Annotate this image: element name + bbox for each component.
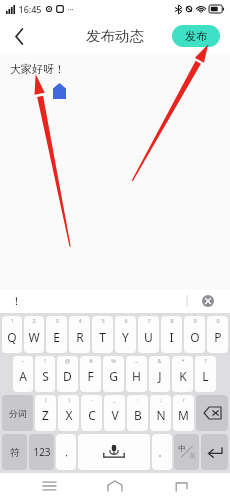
staticText: G: [109, 368, 118, 384]
staticText: 大家好呀！: [10, 62, 65, 76]
button[interactable]: 符: [2, 434, 27, 470]
staticText: I: [169, 329, 174, 345]
staticText: D: [63, 368, 72, 384]
staticText: A: [19, 368, 27, 384]
staticText: ~: [21, 357, 25, 364]
button[interactable]: 中: [174, 434, 199, 470]
button[interactable]: (: [35, 395, 56, 431]
button[interactable]: 发布: [172, 25, 220, 47]
staticText: Y: [122, 329, 129, 345]
button[interactable]: 3: [46, 316, 67, 353]
button[interactable]: @: [57, 356, 78, 392]
button[interactable]: 。: [152, 434, 172, 470]
staticText: 发布动态: [86, 27, 144, 45]
staticText: 8: [170, 317, 174, 324]
button[interactable]: :: [127, 395, 148, 431]
staticText: P: [214, 329, 222, 345]
staticText: @: [65, 357, 70, 364]
button[interactable]: …: [126, 356, 147, 392]
button[interactable]: 0: [207, 316, 228, 353]
button[interactable]: 8: [161, 316, 182, 353]
button[interactable]: 6: [115, 316, 136, 353]
button[interactable]: 9: [184, 316, 205, 353]
button[interactable]: *: [172, 356, 193, 392]
button[interactable]: Clear: [198, 291, 218, 311]
staticText: F: [87, 368, 94, 384]
button[interactable]: Backspace: [196, 395, 228, 431]
button[interactable]: ！: [8, 292, 25, 310]
button[interactable]: /: [173, 395, 194, 431]
staticText: 中: [178, 444, 186, 453]
staticText: M: [178, 407, 189, 423]
staticText: &: [157, 357, 162, 364]
staticText: L: [202, 368, 209, 384]
button[interactable]: Home: [98, 475, 132, 497]
staticText: ，: [62, 447, 71, 458]
button[interactable]: Back: [6, 23, 32, 49]
staticText: _: [113, 396, 116, 403]
button[interactable]: ~: [13, 356, 33, 392]
staticText: /: [182, 396, 185, 403]
staticText: (: [45, 396, 47, 403]
button[interactable]: 分词: [2, 395, 33, 431]
button[interactable]: _: [104, 395, 125, 431]
staticText: C: [88, 407, 96, 423]
staticText: …: [134, 357, 139, 364]
staticText: T: [99, 329, 106, 345]
staticText: 5: [101, 317, 105, 324]
staticText: E: [53, 329, 60, 345]
button[interactable]: Recents: [32, 475, 66, 497]
staticText: V: [111, 407, 119, 423]
button[interactable]: Back: [164, 475, 198, 497]
staticText: S: [42, 368, 49, 384]
staticText: K: [179, 368, 187, 384]
button[interactable]: !: [35, 356, 55, 392]
button[interactable]: Enter: [201, 434, 228, 470]
button[interactable]: #: [80, 356, 101, 392]
staticText: R: [76, 329, 84, 345]
staticText: 英: [189, 452, 196, 460]
staticText: ?: [204, 357, 207, 364]
staticText: U: [144, 329, 153, 345]
button[interactable]: -: [81, 395, 102, 431]
button[interactable]: &: [149, 356, 170, 392]
staticText: Z: [42, 407, 49, 423]
button[interactable]: 1: [2, 316, 22, 353]
staticText: N: [156, 407, 166, 423]
staticText: 0: [216, 317, 220, 324]
button[interactable]: 2: [24, 316, 44, 353]
staticText: 16:45: [18, 3, 42, 15]
staticText: H: [132, 368, 141, 384]
button[interactable]: 5: [92, 316, 113, 353]
staticText: 。: [158, 447, 167, 458]
staticText: ): [68, 396, 70, 403]
button[interactable]: 7: [138, 316, 159, 353]
staticText: X: [65, 407, 73, 423]
button[interactable]: ): [58, 395, 79, 431]
staticText: ！: [11, 294, 22, 308]
staticText: O: [190, 329, 200, 345]
staticText: B: [134, 407, 142, 423]
staticText: %: [111, 357, 116, 364]
button[interactable]: 4: [69, 316, 90, 353]
staticText: 4: [78, 317, 82, 324]
staticText: 7: [147, 317, 151, 324]
staticText: 9: [193, 317, 197, 324]
staticText: :: [137, 396, 139, 403]
staticText: W: [28, 329, 40, 345]
staticText: 分词: [9, 408, 27, 419]
button[interactable]: ;: [150, 395, 171, 431]
staticText: ;: [160, 396, 162, 403]
staticText: 6: [124, 317, 128, 324]
button[interactable]: 123: [29, 434, 54, 470]
staticText: *: [181, 357, 185, 364]
button[interactable]: ?: [195, 356, 216, 392]
staticText: 发布: [185, 29, 207, 43]
button[interactable]: ，: [56, 434, 76, 470]
staticText: 1: [10, 317, 14, 324]
button[interactable]: %: [103, 356, 124, 392]
button[interactable]: Space / Voice input: [78, 434, 150, 470]
staticText: 3: [55, 317, 59, 324]
staticText: -: [91, 396, 93, 403]
staticText: 123: [33, 445, 51, 459]
